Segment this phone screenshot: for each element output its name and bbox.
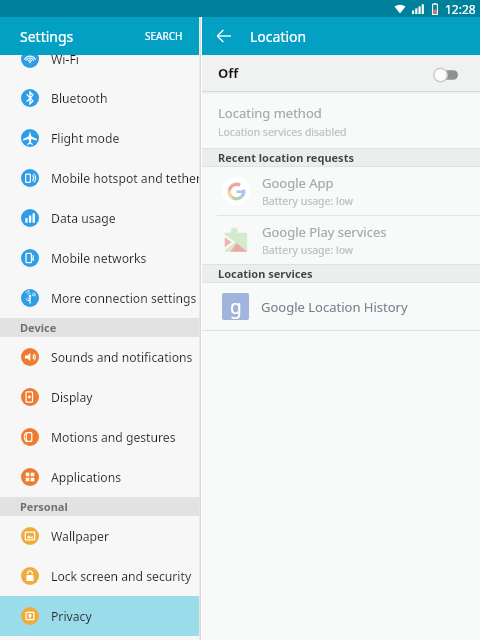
staticText: Location services <box>218 266 313 281</box>
button[interactable]: Motions and gestures <box>0 417 199 457</box>
staticText: Applications <box>51 469 122 486</box>
staticText: Display <box>51 389 93 406</box>
staticText: Battery usage: low <box>262 194 354 208</box>
staticText: Device <box>20 320 57 335</box>
staticText: Google App <box>262 174 334 192</box>
staticText: Battery usage: low <box>262 243 354 257</box>
button[interactable]: Wallpaper <box>0 516 199 556</box>
button[interactable]: Google Play services <box>202 216 480 264</box>
button[interactable]: Applications <box>0 457 199 497</box>
staticText: 12:28 <box>445 1 476 17</box>
button[interactable]: Flight mode <box>0 118 199 158</box>
button[interactable]: Wi-Fi <box>0 55 199 78</box>
staticText: Wi-Fi <box>51 55 79 68</box>
staticText: Motions and gestures <box>51 429 176 446</box>
button[interactable]: Mobile networks <box>0 238 199 278</box>
staticText: Sounds and notifications <box>51 349 193 366</box>
button[interactable] <box>202 20 242 52</box>
button[interactable]: Data usage <box>0 198 199 238</box>
staticText: Flight mode <box>51 130 120 147</box>
staticText: Location <box>250 27 307 46</box>
button[interactable]: Bluetooth <box>0 78 199 118</box>
staticText: More connection settings <box>51 290 197 307</box>
staticText: Data usage <box>51 210 116 227</box>
staticText: Wallpaper <box>51 528 109 545</box>
staticText: Mobile networks <box>51 250 147 267</box>
staticText: Bluetooth <box>51 90 108 107</box>
staticText: Lock screen and security <box>51 568 192 585</box>
staticText: Off <box>218 64 239 82</box>
button[interactable]: g <box>202 283 480 330</box>
staticText: SEARCH <box>145 29 183 43</box>
staticText: g <box>230 294 242 320</box>
staticText: Personal <box>20 499 68 514</box>
button[interactable]: Mobile hotspot and tether.. <box>0 158 199 198</box>
staticText: Mobile hotspot and tether.. <box>51 170 199 187</box>
staticText: Settings <box>20 27 74 46</box>
button[interactable]: Sounds and notifications <box>0 337 199 377</box>
staticText: Google Play services <box>262 223 387 241</box>
button[interactable]: Privacy <box>0 596 199 636</box>
button[interactable]: More connection settings <box>0 278 199 318</box>
staticText: Privacy <box>51 608 92 625</box>
staticText: Google Location History <box>261 298 408 316</box>
staticText: Recent location requests <box>218 150 354 165</box>
button[interactable]: SEARCH <box>137 21 191 51</box>
button[interactable]: Off <box>202 55 480 91</box>
button[interactable]: Display <box>0 377 199 417</box>
staticText: Locating method <box>218 104 322 122</box>
button[interactable]: Google App <box>202 167 480 215</box>
button[interactable]: Lock screen and security <box>0 556 199 596</box>
staticText: Location services disabled <box>218 125 347 139</box>
